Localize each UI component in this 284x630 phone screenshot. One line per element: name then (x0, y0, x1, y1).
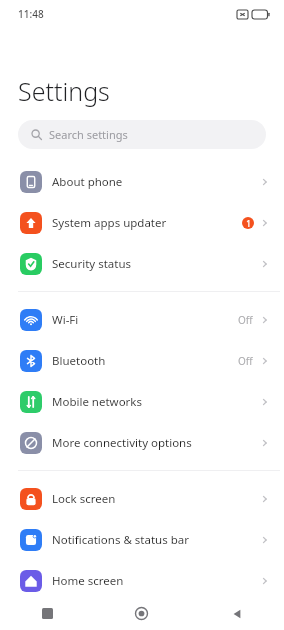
button[interactable]: Home (94, 597, 189, 630)
staticText: 1 (246, 218, 251, 229)
staticText: Off (238, 354, 253, 368)
button[interactable]: About phone (0, 161, 284, 202)
staticText: Settings (18, 74, 110, 108)
staticText: Lock screen (52, 491, 260, 507)
staticText: Security status (52, 256, 260, 272)
staticText: Notifications & status bar (52, 532, 260, 548)
staticText: Mobile networks (52, 394, 260, 410)
staticText: Home screen (52, 573, 260, 589)
button[interactable]: Mobile networks (0, 381, 284, 422)
button[interactable]: Wi-Fi (0, 299, 284, 340)
button[interactable]: Search settings (18, 120, 266, 149)
button[interactable]: Recent apps (0, 597, 94, 630)
button[interactable]: Home screen (0, 560, 284, 601)
staticText: More connectivity options (52, 435, 260, 451)
staticText: Off (238, 313, 253, 327)
staticText: System apps updater (52, 215, 242, 231)
button[interactable]: Lock screen (0, 478, 284, 519)
button[interactable]: More connectivity options (0, 422, 284, 463)
button[interactable]: Notifications & status bar (0, 519, 284, 560)
button[interactable]: Security status (0, 243, 284, 284)
staticText: Bluetooth (52, 353, 238, 369)
staticText: About phone (52, 174, 260, 190)
staticText: 11:48 (18, 7, 44, 21)
staticText: Search settings (49, 127, 128, 142)
button[interactable]: Back (189, 597, 284, 630)
staticText: Wi-Fi (52, 312, 238, 328)
button[interactable]: Bluetooth (0, 340, 284, 381)
button[interactable]: System apps updater (0, 202, 284, 243)
